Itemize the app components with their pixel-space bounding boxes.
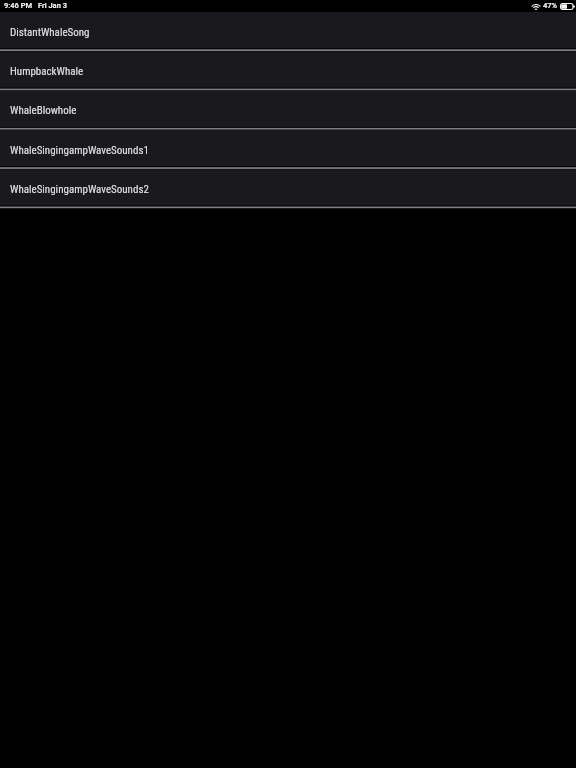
staticText: DistantWhaleSong — [10, 26, 90, 39]
button[interactable]: HumpbackWhale — [0, 51, 576, 90]
button[interactable]: WhaleBlowhole — [0, 90, 576, 129]
staticText: WhaleSingingampWaveSounds1 — [10, 144, 149, 157]
staticText: Fri Jan 3 — [38, 1, 67, 10]
other: Battery 47 percent — [560, 3, 575, 10]
button[interactable]: DistantWhaleSong — [0, 12, 576, 51]
staticText: HumpbackWhale — [10, 65, 84, 78]
staticText: WhaleBlowhole — [10, 104, 77, 117]
other: Wi-Fi signal — [532, 4, 540, 10]
button[interactable]: WhaleSingingampWaveSounds1 — [0, 129, 576, 169]
staticText: WhaleSingingampWaveSounds2 — [10, 183, 149, 196]
staticText: 47% — [543, 1, 558, 10]
button[interactable]: WhaleSingingampWaveSounds2 — [0, 169, 576, 208]
staticText: 9:46 PM — [4, 1, 33, 10]
